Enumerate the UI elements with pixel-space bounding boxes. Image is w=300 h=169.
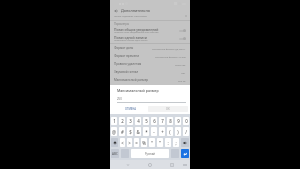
button[interactable]: 4 (135, 117, 141, 125)
button[interactable]: ОТМЕНА (112, 105, 148, 113)
staticText: 6 (153, 118, 156, 124)
button[interactable]: “ (149, 138, 155, 147)
staticText: Показать окно уведомления при событии (114, 31, 159, 34)
staticText: 8 (169, 118, 172, 124)
button[interactable]: + (159, 127, 165, 136)
staticText: ( (169, 129, 171, 135)
staticText: 250 (117, 97, 122, 101)
button[interactable]: 7 (159, 117, 165, 125)
staticText: Максимальный размер (114, 78, 149, 82)
staticText: # (121, 129, 124, 135)
staticText: ОК (166, 107, 170, 111)
staticText: 2 (121, 118, 124, 124)
button[interactable]: # (119, 127, 125, 136)
staticText: < (121, 140, 124, 146)
button[interactable]: & (135, 127, 141, 136)
staticText: Формат времени (114, 54, 140, 58)
staticText: Максимальный размер (117, 88, 159, 93)
staticText: ABC (112, 152, 118, 156)
staticText: * (145, 129, 148, 135)
button[interactable]: 6 (151, 117, 157, 125)
button[interactable]: = (134, 138, 139, 147)
staticText: Звуковой сигнал (114, 70, 139, 74)
button[interactable]: 1 (111, 117, 117, 125)
button[interactable]: Русский (131, 149, 169, 158)
staticText: Системный формат чч:мм (155, 55, 186, 58)
button[interactable]: * (143, 127, 149, 136)
button[interactable]: Правило удаления (110, 60, 190, 68)
staticText: Нет (181, 71, 186, 74)
staticText: @ (112, 129, 116, 135)
staticText: 9 (177, 118, 180, 124)
staticText: Системный формат дд.мм.гг (152, 47, 186, 50)
button[interactable]: $ (127, 127, 133, 136)
staticText: “ (151, 140, 153, 146)
staticText: 3 (129, 118, 132, 124)
button[interactable]: 8 (167, 117, 173, 125)
staticText: 250 кБ (178, 79, 186, 82)
button[interactable]: Максимальный размер (110, 76, 190, 84)
staticText: ОТМЕНА (125, 107, 136, 111)
staticText: Параметры (114, 22, 130, 26)
staticText: 4 (137, 118, 140, 124)
button[interactable]: / (183, 127, 189, 136)
button[interactable]: Back (112, 7, 119, 14)
staticText: % (142, 140, 146, 146)
staticText: : (167, 140, 169, 146)
staticText: Сразу же (175, 63, 186, 66)
button[interactable]: : (165, 138, 171, 147)
button[interactable]: - (151, 127, 157, 136)
button[interactable]: backspace (181, 138, 189, 147)
button[interactable]: 0 (183, 117, 189, 125)
staticText: 7 (161, 118, 164, 124)
staticText: ” (159, 140, 161, 146)
button[interactable]: Recents (168, 161, 176, 169)
button[interactable]: ” (157, 138, 163, 147)
button[interactable]: 5 (143, 117, 149, 125)
staticText: Дополнительно (121, 8, 150, 13)
staticText: Формат даты (114, 46, 134, 50)
button[interactable]: enter (181, 149, 189, 158)
button[interactable]: 9 (175, 117, 181, 125)
staticText: ) (177, 129, 179, 135)
staticText: - (153, 129, 155, 135)
button[interactable]: ; (173, 138, 179, 147)
button[interactable]: > (127, 138, 132, 147)
button[interactable]: ABC (111, 149, 119, 158)
staticText: / (185, 129, 187, 135)
button[interactable]: Switch keyboard (181, 161, 188, 168)
staticText: Правило удаления (114, 62, 142, 66)
staticText: > (128, 140, 131, 146)
staticText: & (136, 129, 140, 135)
button[interactable]: Back (124, 161, 132, 169)
button[interactable]: Формат времени (110, 52, 190, 60)
button[interactable]: % (141, 138, 147, 147)
staticText: 1 (113, 118, 116, 124)
button[interactable]: < (120, 138, 125, 147)
staticText: 5 (145, 118, 148, 124)
staticText: Показ одной записи (114, 35, 147, 39)
button[interactable]: 2 (119, 117, 125, 125)
staticText: $ (129, 129, 132, 135)
staticText: + (161, 129, 164, 135)
button[interactable]: 3 (127, 117, 133, 125)
button[interactable]: Показ одной записи (110, 34, 190, 42)
staticText: = (135, 140, 138, 146)
button[interactable]: Звуковой сигнал (110, 68, 190, 76)
button[interactable]: Показ общих уведомлений (110, 26, 190, 34)
staticText: Показ общих уведомлений (114, 27, 159, 31)
staticText: Показывать только одну запись (114, 39, 148, 42)
staticText: 0 (185, 118, 188, 124)
button[interactable]: @ (111, 127, 117, 136)
button[interactable]: Home (146, 161, 154, 169)
staticText: Русский (145, 152, 155, 156)
button[interactable]: ОК (148, 106, 188, 112)
button[interactable]: Формат даты (110, 44, 190, 52)
staticText: Меню содержит настройки (114, 14, 147, 17)
button[interactable]: shift (111, 138, 118, 147)
button[interactable]: ) (175, 127, 181, 136)
staticText: ; (175, 140, 177, 146)
button[interactable]: ( (167, 127, 173, 136)
